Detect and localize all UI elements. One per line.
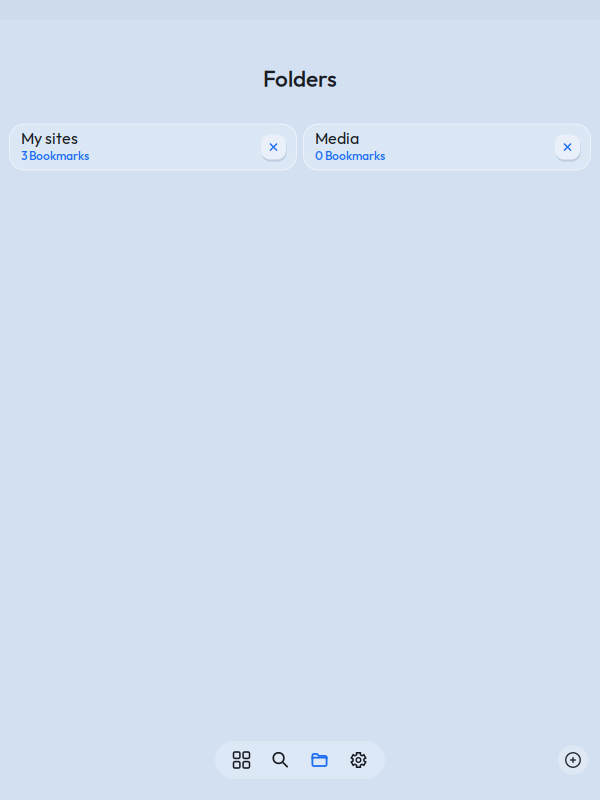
staticText: 0 Bookmarks — [315, 148, 385, 163]
button[interactable]: Dashboard — [222, 741, 261, 779]
button[interactable]: Media — [303, 124, 591, 171]
button[interactable]: Remove My sites — [259, 132, 288, 163]
button[interactable]: Folders — [300, 741, 339, 779]
button[interactable]: Settings — [339, 741, 378, 779]
staticText: My sites — [21, 128, 78, 148]
button[interactable]: My sites — [9, 124, 297, 171]
staticText: Folders — [263, 64, 337, 93]
staticText: 3 Bookmarks — [21, 148, 89, 163]
button[interactable]: Add folder — [551, 738, 595, 782]
button[interactable]: Remove Media — [553, 132, 582, 163]
button[interactable]: Search — [261, 741, 300, 779]
staticText: Media — [315, 128, 359, 148]
